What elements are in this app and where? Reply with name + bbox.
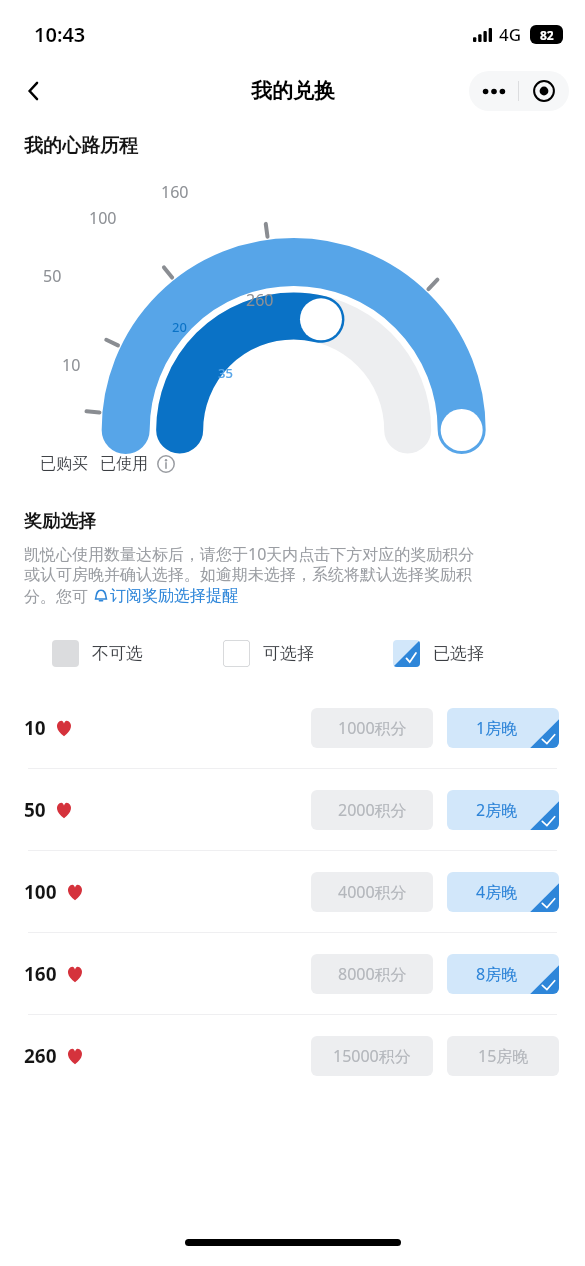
staticText: 奖励选择	[24, 510, 96, 533]
staticText: 1000积分	[338, 717, 407, 739]
staticText: 4G	[499, 23, 522, 46]
staticText: 2000积分	[338, 799, 407, 821]
staticText: 10	[24, 715, 46, 741]
button[interactable]: 10	[0, 687, 585, 768]
staticText: 202	[172, 318, 193, 339]
staticText: 50	[24, 797, 46, 823]
staticText: 10	[62, 354, 81, 376]
staticText: 我的心路历程	[24, 134, 138, 158]
button[interactable]: 4000积分	[311, 872, 433, 912]
button[interactable]: 已选择	[393, 640, 563, 667]
button[interactable]: 15000积分	[311, 1036, 433, 1076]
staticText: 已购买	[40, 454, 88, 474]
button[interactable]: 50	[0, 769, 585, 850]
staticText: 已选择	[433, 643, 484, 664]
staticText: 8000积分	[338, 963, 407, 985]
staticText: 4房晚	[476, 881, 518, 903]
staticText: 可选择	[263, 643, 314, 664]
staticText: 50	[43, 265, 62, 287]
staticText: 100	[89, 207, 117, 229]
button[interactable]: 15房晚	[447, 1036, 559, 1076]
button[interactable]: 8房晚	[447, 954, 559, 994]
button[interactable]: More options	[469, 71, 518, 111]
staticText: 分。您可	[24, 585, 93, 607]
button[interactable]: 100	[0, 851, 585, 932]
staticText: 不可选	[92, 643, 143, 664]
button[interactable]: Info	[156, 454, 176, 474]
staticText: 或认可房晚并确认选择。如逾期未选择，系统将默认选择奖励积	[24, 565, 472, 585]
button[interactable]: 可选择	[223, 640, 393, 667]
staticText: 82	[540, 27, 554, 43]
staticText: 凯悦心使用数量达标后，请您于10天内点击下方对应的奖励积分	[24, 543, 475, 565]
button[interactable]: 1000积分	[311, 708, 433, 748]
button[interactable]: 260	[0, 1015, 585, 1096]
staticText: 4000积分	[338, 881, 407, 903]
staticText: 160	[161, 181, 189, 203]
button[interactable]: Back	[12, 69, 56, 113]
staticText: 260	[24, 1043, 57, 1069]
staticText: 15000积分	[333, 1045, 411, 1067]
button[interactable]: 8000积分	[311, 954, 433, 994]
staticText: 100	[24, 879, 57, 905]
staticText: 我的兑换	[251, 78, 335, 104]
button[interactable]: 2000积分	[311, 790, 433, 830]
staticText: 350	[218, 364, 239, 385]
button[interactable]: 160	[0, 933, 585, 1014]
staticText: 1房晚	[476, 717, 518, 739]
staticText: 10:43	[34, 21, 86, 48]
staticText: 已使用	[100, 454, 148, 474]
button[interactable]: 4房晚	[447, 872, 559, 912]
staticText: 8房晚	[476, 963, 518, 985]
button[interactable]: Close	[519, 71, 569, 111]
button[interactable]: 1房晚	[447, 708, 559, 748]
button[interactable]: 2房晚	[447, 790, 559, 830]
staticText: 260	[246, 289, 274, 311]
staticText: 160	[24, 961, 57, 987]
staticText: 2房晚	[476, 799, 518, 821]
staticText: 订阅奖励选择提醒	[110, 586, 238, 606]
button[interactable]: 不可选	[52, 640, 223, 667]
staticText: 15房晚	[478, 1045, 529, 1067]
button[interactable]: 订阅奖励选择提醒	[93, 586, 238, 606]
